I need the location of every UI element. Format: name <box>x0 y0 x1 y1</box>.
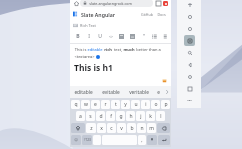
button[interactable]: p <box>161 100 170 109</box>
button[interactable]: Volume <box>184 23 195 34</box>
button[interactable]: Enter <box>158 135 170 145</box>
staticText: editable <box>87 47 103 52</box>
button[interactable]: Quote <box>139 32 148 41</box>
button[interactable]: y <box>121 100 130 109</box>
button[interactable]: Overview <box>184 83 195 94</box>
button[interactable]: , <box>138 135 146 145</box>
staticText: g <box>119 113 123 120</box>
button[interactable]: Back <box>184 59 195 70</box>
staticText: b <box>130 125 134 132</box>
staticText: B <box>76 33 80 40</box>
staticText: rich <box>103 47 112 52</box>
button[interactable]: s <box>86 111 95 121</box>
button[interactable]: Underline <box>95 32 104 41</box>
staticText: “ <box>143 33 145 40</box>
staticText: better than a <box>135 47 161 52</box>
button[interactable]: Voice input <box>147 135 157 145</box>
button[interactable]: i <box>141 100 150 109</box>
button[interactable]: e <box>91 100 100 109</box>
staticText: q <box>74 101 78 108</box>
staticText: U <box>98 33 102 40</box>
staticText: This is h1 <box>74 62 113 74</box>
button[interactable]: g <box>116 111 125 121</box>
staticText: m <box>149 125 154 132</box>
staticText: a <box>79 113 82 120</box>
staticText: e <box>94 101 97 108</box>
staticText: p <box>164 101 168 108</box>
button[interactable]: k <box>146 111 155 121</box>
button[interactable]: Home <box>184 71 195 82</box>
staticText: t <box>115 101 117 108</box>
button[interactable]: More suggestions <box>163 86 171 98</box>
button[interactable]: Power <box>184 11 195 22</box>
staticText: Rich Text <box>80 23 96 28</box>
button[interactable]: evitable <box>97 86 125 98</box>
button[interactable]: b <box>127 123 136 133</box>
button[interactable]: Code <box>106 32 115 41</box>
staticText: z <box>90 125 93 132</box>
button[interactable]: m <box>147 123 156 133</box>
staticText: f <box>110 113 112 120</box>
staticText: x <box>100 125 103 132</box>
button[interactable]: editable <box>70 86 97 98</box>
button[interactable]: Docs <box>155 12 168 17</box>
button[interactable]: t <box>111 100 120 109</box>
staticText: l <box>160 113 162 120</box>
button[interactable]: z <box>86 123 96 133</box>
button[interactable]: Shift <box>71 123 85 133</box>
button[interactable]: l <box>156 111 165 121</box>
button[interactable]: u <box>131 100 140 109</box>
staticText: j <box>140 113 142 120</box>
button[interactable]: Zoom <box>184 47 195 58</box>
button[interactable]: v <box>117 123 126 133</box>
staticText: ☺ <box>74 138 78 142</box>
button[interactable]: Tabs <box>155 0 162 7</box>
button[interactable]: Bulleted list <box>150 32 159 41</box>
button[interactable]: Home <box>72 0 80 7</box>
staticText: GitHub <box>141 12 153 17</box>
staticText: <textarea> <box>74 54 95 59</box>
button[interactable]: w <box>81 100 90 109</box>
button[interactable]: Numbered list <box>161 32 168 41</box>
staticText: ?123 <box>84 138 91 142</box>
button[interactable]: q <box>71 100 80 109</box>
button[interactable]: More <box>184 95 195 105</box>
button[interactable]: Pin <box>184 0 195 10</box>
button[interactable]: x <box>97 123 106 133</box>
button[interactable]: veritable <box>125 86 153 98</box>
staticText: i <box>145 101 147 108</box>
staticText: w <box>84 101 88 108</box>
button[interactable]: o <box>151 100 160 109</box>
button[interactable]: j <box>136 111 145 121</box>
button[interactable]: d <box>96 111 105 121</box>
button[interactable]: f <box>106 111 115 121</box>
staticText: e <box>157 89 160 96</box>
staticText: y <box>124 101 127 108</box>
staticText: r <box>104 101 107 108</box>
button[interactable]: Heading 2 <box>128 32 137 41</box>
button[interactable]: Numbers <box>82 135 92 145</box>
button[interactable]: GitHub <box>139 12 155 17</box>
button[interactable]: Bold <box>73 32 82 41</box>
button[interactable]: Italic <box>84 32 93 41</box>
staticText: text, <box>112 47 123 52</box>
button[interactable]: slate-angular.ngrock.com <box>80 0 153 7</box>
staticText: v <box>120 125 123 132</box>
button[interactable]: a <box>76 111 85 121</box>
staticText: h <box>129 113 133 120</box>
button[interactable]: Screenshot <box>184 35 195 46</box>
button[interactable]: c <box>107 123 116 133</box>
button[interactable]: e <box>153 86 163 98</box>
button[interactable]: Backspace <box>157 123 170 133</box>
staticText: I <box>88 33 90 40</box>
staticText: n <box>140 125 144 132</box>
button[interactable]: r <box>101 100 110 109</box>
button[interactable]: n <box>137 123 146 133</box>
button[interactable]: Heading 1 <box>117 32 126 41</box>
button[interactable]: h <box>126 111 135 121</box>
staticText: This is <box>74 47 87 52</box>
button[interactable]: Emoji keyboard <box>71 135 81 145</box>
button[interactable]: Space <box>93 135 101 145</box>
button[interactable]: Record <box>162 0 169 7</box>
